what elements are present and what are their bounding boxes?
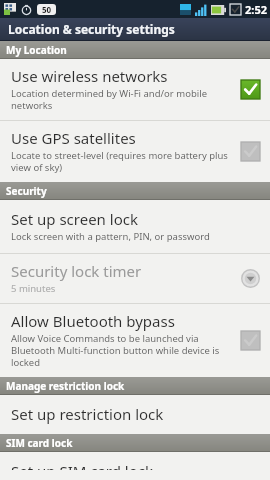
staticText: Location & security settings [8,21,175,37]
button[interactable]: Open list [239,267,261,289]
staticText: Use wireless networks [11,66,168,86]
staticText: Set up restriction lock [11,404,164,424]
button[interactable]: Use GPS satellites [0,121,270,182]
button[interactable]: Use wireless networks [0,59,270,120]
staticText: 50 [42,4,52,15]
staticText: 2:52 [245,2,267,17]
staticText: Lock screen with a pattern, PIN, or pass… [11,230,210,243]
button[interactable]: Security lock timer [0,254,270,303]
staticText: Set up SIM card lock [11,461,154,470]
staticText: Use GPS satellites [11,128,136,148]
staticText: Locate to street-level (requires more ba… [11,149,232,174]
staticText: Location determined by Wi-Fi and/or mobi… [11,87,232,112]
staticText: Manage restriction lock [6,379,125,393]
staticText: 5 minutes [11,282,56,295]
button[interactable]: Set up SIM card lock [0,452,270,480]
staticText: Security [6,184,47,198]
button[interactable]: Checked [240,79,261,100]
staticText: Security lock timer [11,261,142,281]
button[interactable]: Set up screen lock [0,200,270,253]
button[interactable]: Unchecked [240,141,261,162]
button[interactable]: Unchecked [240,330,261,351]
staticText: My Location [6,43,67,57]
button[interactable]: Allow Bluetooth bypass [0,304,270,377]
staticText: Allow Voice Commands to be launched via … [11,332,232,369]
staticText: SIM card lock [6,436,73,450]
button[interactable]: Set up restriction lock [0,395,270,434]
staticText: Set up screen lock [11,209,138,229]
staticText: Allow Bluetooth bypass [11,311,175,331]
